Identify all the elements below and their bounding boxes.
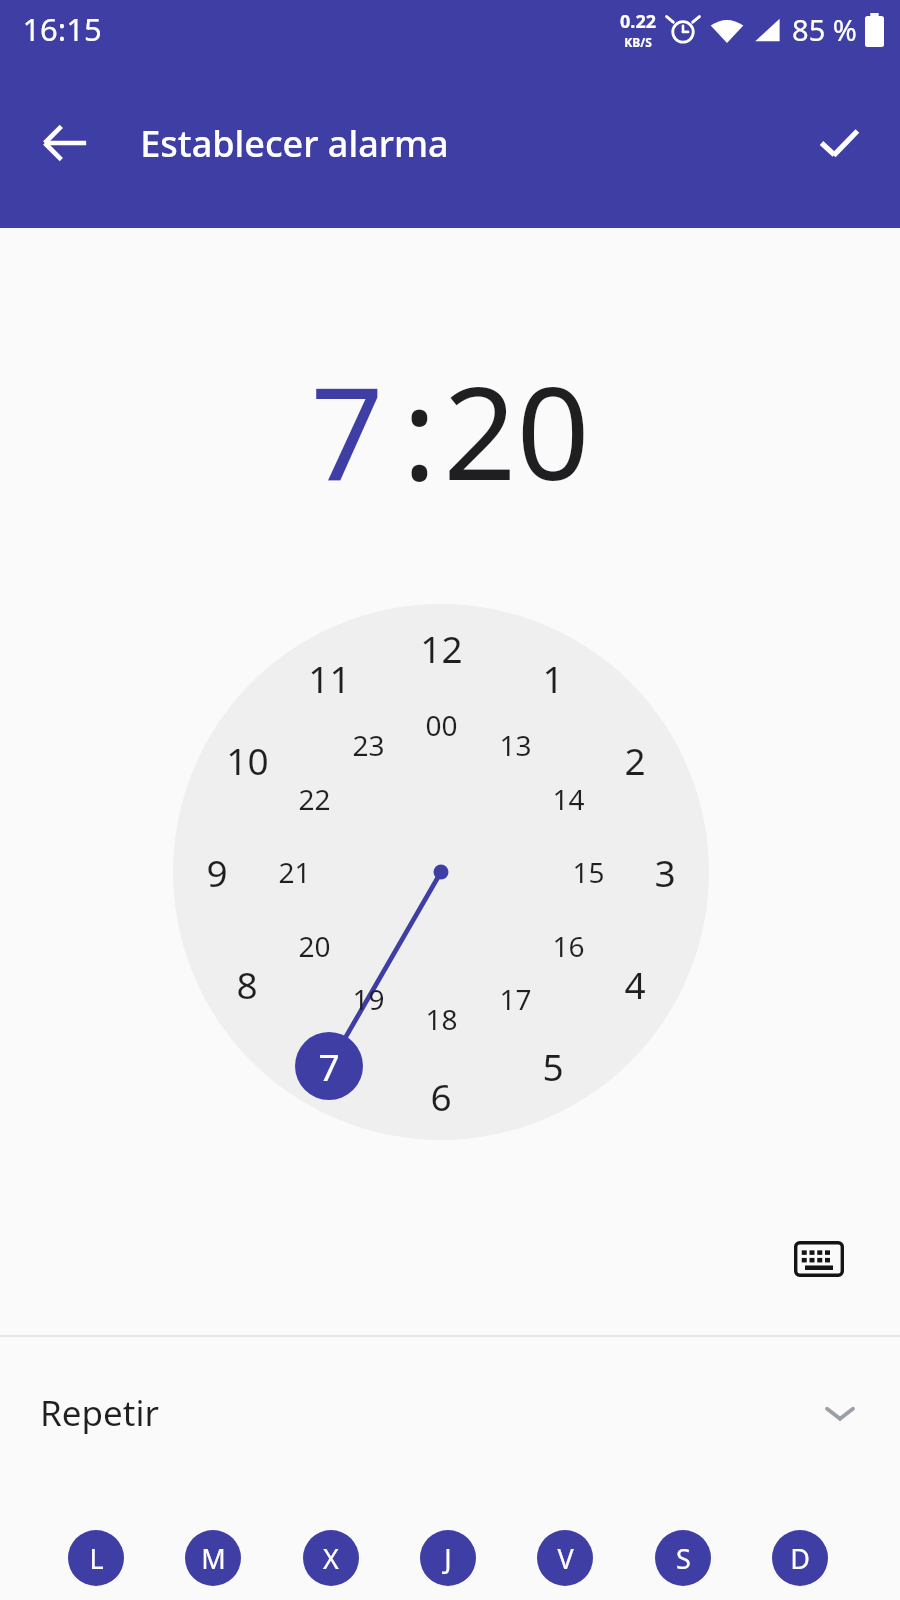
button[interactable]: Switch to text input mode <box>788 1228 850 1290</box>
button[interactable]: 00 <box>403 695 479 755</box>
button[interactable]: L <box>68 1530 124 1586</box>
button[interactable]: 6 <box>403 1066 479 1126</box>
button[interactable]: 3 <box>627 842 703 902</box>
button[interactable]: 17 <box>477 969 553 1029</box>
button[interactable]: V <box>537 1530 593 1586</box>
button[interactable]: 15 <box>550 842 626 902</box>
staticText: 7 <box>310 343 384 517</box>
button[interactable]: 23 <box>330 715 406 775</box>
button[interactable]: 11 <box>291 648 367 708</box>
staticText: 10 <box>226 735 269 785</box>
staticText: 18 <box>425 1000 458 1038</box>
staticText: KB/S <box>624 34 652 50</box>
staticText: 85 % <box>792 10 857 49</box>
staticText: 6 <box>430 1071 452 1121</box>
button[interactable]: Repetir <box>0 1337 900 1489</box>
staticText: 12 <box>420 623 463 673</box>
button[interactable]: 21 <box>256 842 332 902</box>
staticText: 17 <box>499 980 532 1018</box>
button[interactable]: 8 <box>209 954 285 1014</box>
button[interactable]: J <box>420 1530 476 1586</box>
staticText: 8 <box>236 959 258 1009</box>
staticText: 1 <box>542 653 564 703</box>
staticText: 20 <box>443 343 590 517</box>
staticText: 20 <box>298 927 331 965</box>
staticText: 19 <box>352 980 385 1018</box>
staticText: 13 <box>499 726 532 764</box>
staticText: M <box>201 1540 226 1577</box>
staticText: V <box>557 1540 574 1577</box>
button[interactable]: M <box>185 1530 241 1586</box>
other: Expand <box>812 1385 868 1441</box>
button[interactable]: 13 <box>477 715 553 775</box>
button[interactable]: D <box>772 1530 828 1586</box>
staticText: S <box>676 1540 691 1577</box>
staticText: 5 <box>542 1041 564 1091</box>
staticText: 11 <box>308 653 351 703</box>
staticText: J <box>444 1540 452 1577</box>
button[interactable]: 18 <box>403 989 479 1049</box>
button[interactable]: 9 <box>179 842 255 902</box>
button[interactable]: 20 <box>276 916 352 976</box>
staticText: 9 <box>206 847 228 897</box>
button[interactable]: 12 <box>403 618 479 678</box>
staticText: 2 <box>624 735 646 785</box>
button[interactable]: 19 <box>330 969 406 1029</box>
staticText: L <box>89 1540 104 1577</box>
staticText: 16 <box>552 927 585 965</box>
staticText: 7 <box>318 1041 340 1091</box>
staticText: D <box>790 1540 810 1577</box>
button[interactable]: 16 <box>530 916 606 976</box>
button[interactable]: 7 <box>291 1036 367 1096</box>
button[interactable]: Confirm <box>802 106 876 180</box>
button[interactable]: 2 <box>597 730 673 790</box>
button[interactable]: 20 <box>443 343 590 517</box>
button[interactable]: 10 <box>209 730 285 790</box>
staticText: 15 <box>572 853 605 891</box>
staticText: Repetir <box>40 1389 159 1437</box>
staticText: 00 <box>425 706 458 744</box>
staticText: 16:15 <box>22 8 102 50</box>
button[interactable]: S <box>655 1530 711 1586</box>
staticText: 21 <box>278 853 311 891</box>
staticText: 23 <box>352 726 385 764</box>
button[interactable]: 4 <box>597 954 673 1014</box>
staticText: 14 <box>552 780 585 818</box>
staticText: Establecer alarma <box>140 119 449 168</box>
staticText: 22 <box>298 780 331 818</box>
button[interactable]: 5 <box>515 1036 591 1096</box>
button[interactable]: 14 <box>530 769 606 829</box>
button[interactable]: X <box>303 1530 359 1586</box>
staticText: 3 <box>654 847 676 897</box>
button[interactable]: 22 <box>276 769 352 829</box>
staticText: 0.22 <box>620 9 656 34</box>
staticText: 4 <box>624 959 646 1009</box>
button[interactable]: Back <box>28 106 102 180</box>
staticText: : <box>402 343 437 517</box>
staticText: X <box>323 1540 339 1577</box>
button[interactable]: 7 <box>310 343 384 517</box>
button[interactable]: 1 <box>515 648 591 708</box>
